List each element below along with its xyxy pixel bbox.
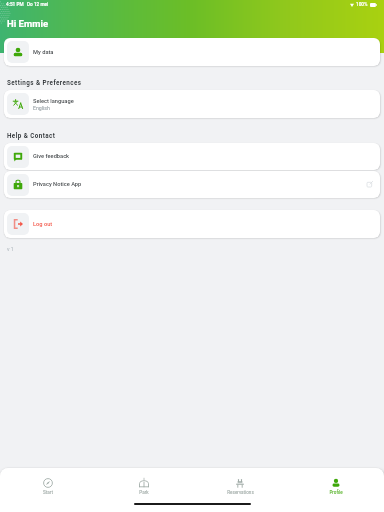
button[interactable]: Log out [4,210,380,238]
staticText: Help & Contact [7,132,56,139]
button[interactable]: Select language [4,90,380,118]
staticText: 4:51 PM Do 12 mei [6,2,49,8]
staticText: Select language [33,98,74,105]
other: Open external link [367,181,373,187]
button[interactable]: Give feedback [4,143,380,170]
staticText: Log out [33,221,53,228]
button[interactable]: Reservations [192,468,288,512]
button[interactable]: Park [96,468,192,512]
staticText: Reservations [227,490,254,495]
staticText: Profile [329,490,343,495]
staticText: Privacy Notice App [33,181,82,188]
button[interactable]: Privacy Notice App [4,171,380,198]
staticText: Settings & Preferences [7,79,82,86]
staticText: Give feedback [33,153,70,160]
staticText: Hi Emmie [7,18,49,29]
staticText: Park [139,490,149,495]
button[interactable]: Profile [288,468,384,512]
staticText: Start [43,490,53,495]
button[interactable]: Start [0,468,96,512]
button[interactable]: My data [4,38,380,66]
staticText: English [33,105,50,111]
staticText: My data [33,49,54,56]
staticText: 100% [356,2,368,8]
staticText: v 1 [7,246,14,252]
